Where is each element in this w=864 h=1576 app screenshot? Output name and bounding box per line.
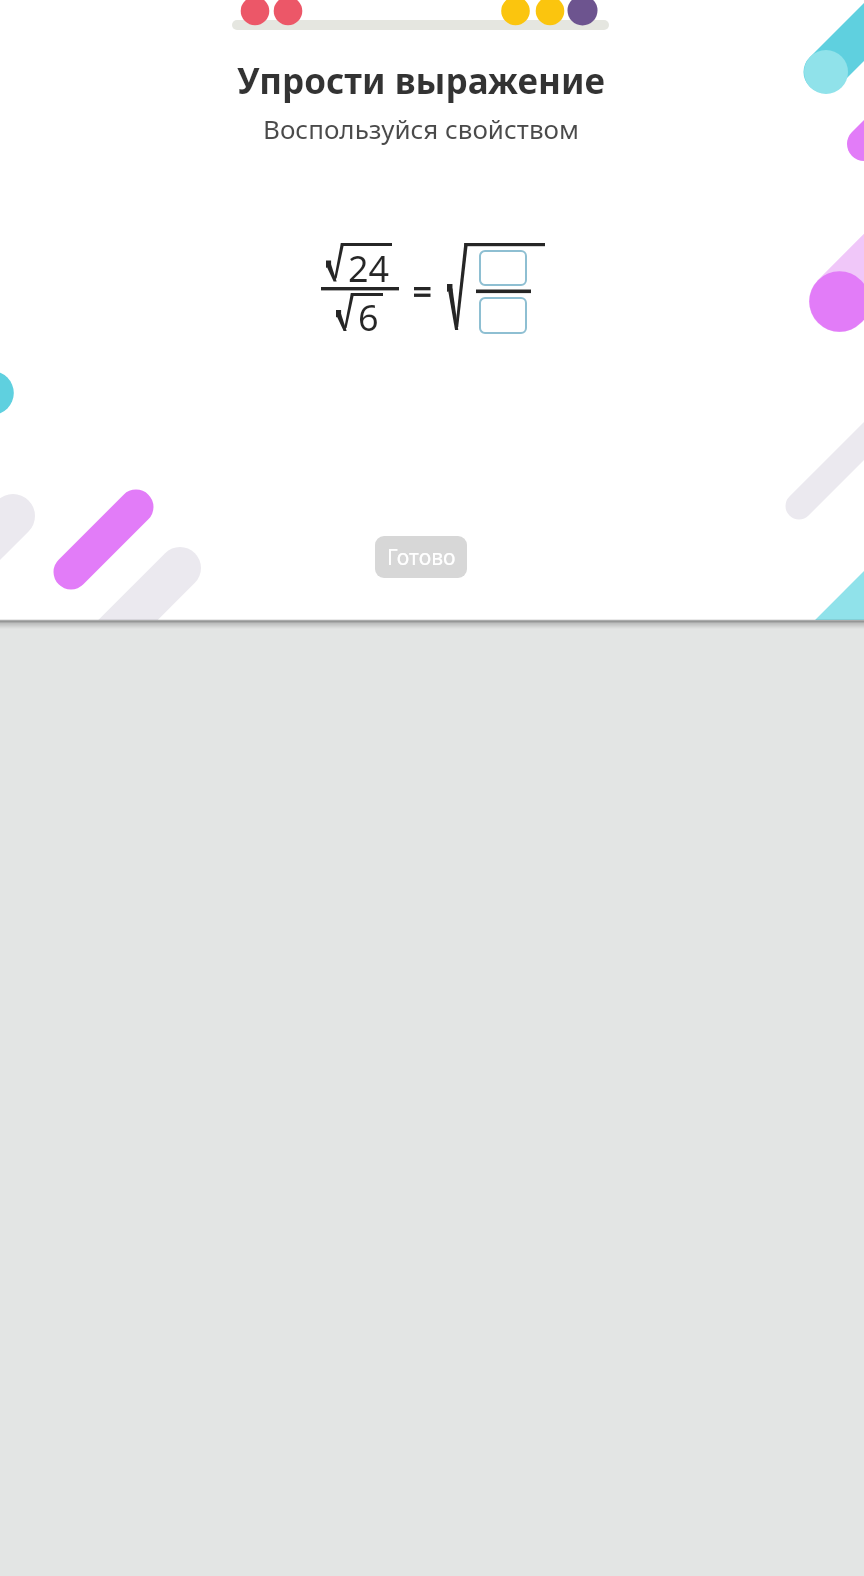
staticText: Упрости выражение <box>0 57 842 105</box>
staticText: Готово <box>387 543 456 572</box>
staticText: 24 <box>348 244 390 293</box>
button[interactable]: Знаменатель, поле ввода <box>479 297 527 334</box>
button[interactable]: Готово <box>375 536 467 578</box>
staticText: 6 <box>358 293 379 342</box>
staticText: Воспользуйся свойством <box>0 111 842 146</box>
button[interactable]: Числитель, поле ввода <box>479 250 527 286</box>
